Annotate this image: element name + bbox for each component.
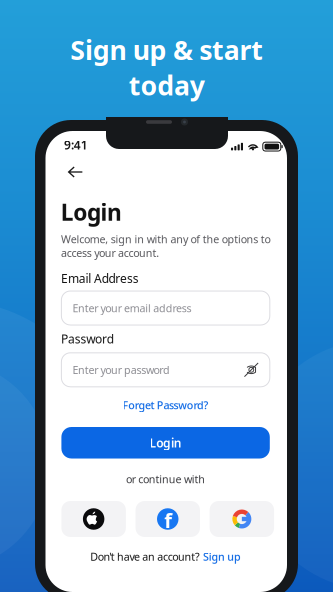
staticText: f (164, 507, 172, 533)
staticText: Login (61, 197, 122, 227)
button[interactable]: Forget Password? (61, 398, 270, 411)
button[interactable]: Sign in with Facebook (135, 501, 200, 537)
staticText: Sign up (203, 549, 241, 564)
button[interactable]: Sign up (203, 549, 241, 564)
staticText: Enter your password (72, 363, 170, 377)
staticText: or continue with (126, 472, 205, 486)
button[interactable]: Login (61, 427, 270, 458)
staticText: Email Address (61, 270, 139, 286)
staticText: Login (149, 435, 182, 451)
staticText: Enter your email address (72, 301, 191, 315)
staticText: Welcome, sign in with any of the options… (61, 232, 271, 246)
staticText: Forget Password? (123, 398, 209, 412)
button[interactable]: Back (58, 159, 92, 185)
staticText: Password (61, 331, 114, 347)
staticText: access your account. (61, 246, 159, 260)
button[interactable]: Sign in with Google (210, 501, 274, 537)
button[interactable]: Sign in with Apple (61, 501, 126, 537)
staticText: Don't have an account? (90, 549, 200, 564)
staticText: 9:41 (64, 137, 88, 153)
staticText: Sign up & start today (70, 32, 263, 103)
